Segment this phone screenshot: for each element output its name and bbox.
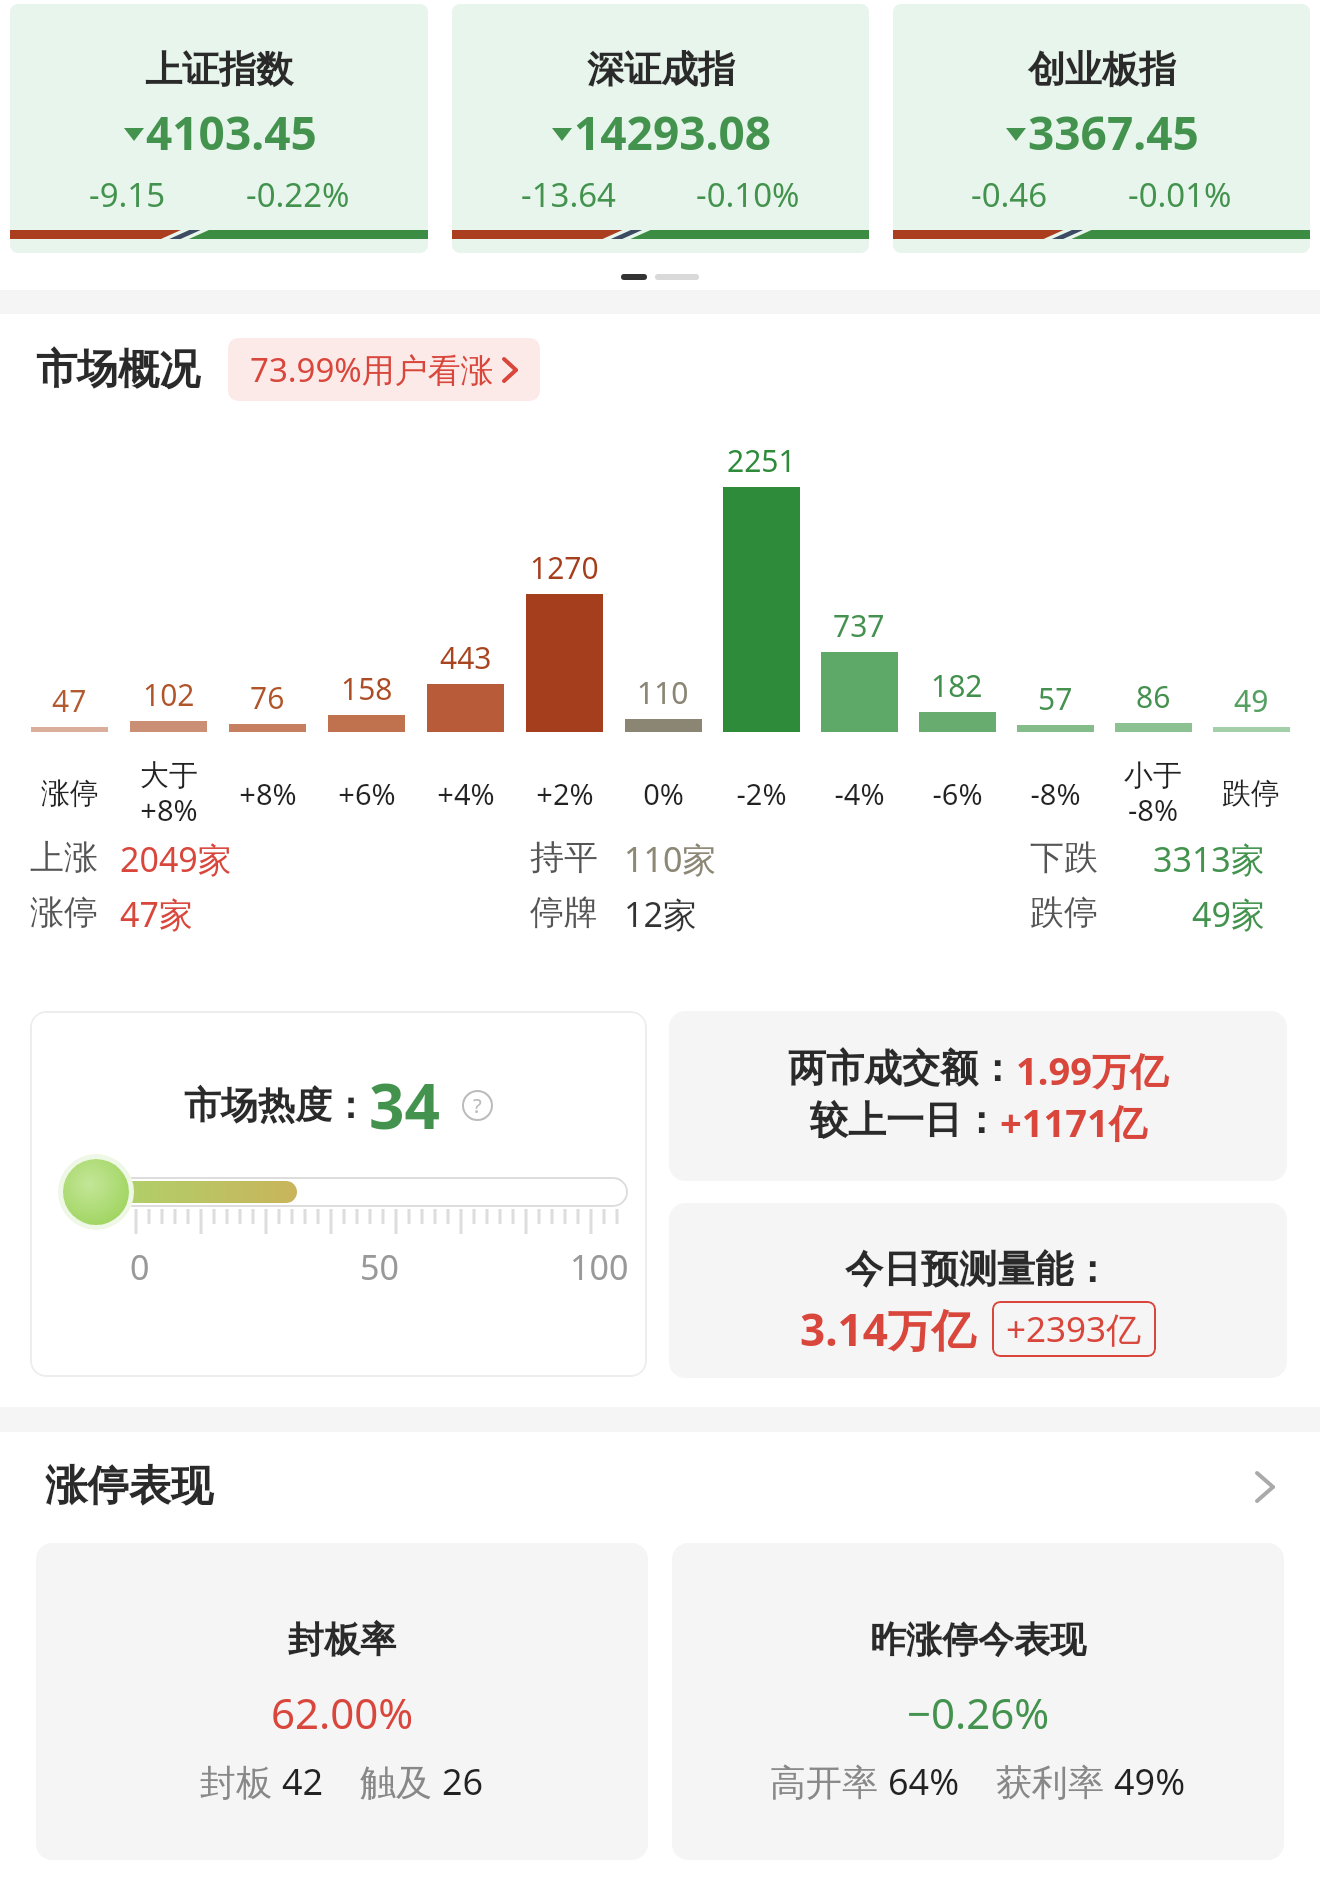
button[interactable]: 市场热度： [30, 1011, 647, 1377]
staticText: 获利率 [996, 1757, 1114, 1806]
staticText: 102 [143, 674, 195, 715]
staticText: +1171亿 [1000, 1096, 1147, 1148]
staticText: 2251 [727, 440, 796, 481]
staticText: -0.01% [1128, 172, 1232, 217]
staticText: 大于 +8% [140, 757, 198, 830]
staticText: 73.99%用户看涨 [250, 347, 494, 392]
staticText: 停牌 [530, 891, 598, 933]
staticText: 下跌 [1030, 836, 1098, 878]
staticText: 49 [1234, 680, 1269, 721]
staticText: 14293.08 [574, 101, 772, 164]
staticText: 57 [1038, 678, 1073, 719]
staticText: +6% [338, 774, 396, 813]
staticText: 100 [570, 1244, 629, 1290]
button[interactable]: 封板率 [36, 1543, 648, 1860]
staticText: 26 [442, 1757, 484, 1806]
staticText: +4% [437, 774, 495, 813]
staticText: ? [473, 1092, 482, 1119]
staticText: 158 [341, 668, 393, 709]
staticText: −0.26% [907, 1684, 1050, 1741]
staticText: +8% [239, 774, 297, 813]
staticText: 涨停 [41, 775, 99, 812]
staticText: 4103.45 [146, 101, 317, 164]
staticText: 182 [931, 665, 983, 706]
button[interactable]: 今日预测量能： [669, 1203, 1287, 1378]
staticText: 今日预测量能： [845, 1245, 1111, 1293]
staticText: 47 [52, 680, 87, 721]
staticText: 49% [1114, 1757, 1186, 1806]
button[interactable]: 昨涨停今表现 [672, 1543, 1284, 1860]
staticText: 昨涨停今表现 [870, 1617, 1086, 1662]
staticText: -8% [1030, 774, 1081, 813]
staticText: 涨停 [30, 891, 98, 933]
staticText: 50 [360, 1244, 399, 1290]
staticText: 42 [282, 1757, 324, 1806]
staticText: 12家 [624, 891, 697, 933]
staticText: 1270 [530, 547, 599, 588]
staticText: 市场热度： [184, 1082, 369, 1129]
staticText: 封板率 [288, 1617, 396, 1662]
staticText: 创业板指 [1028, 46, 1176, 93]
staticText: 0 [130, 1244, 150, 1290]
staticText: 较上一日： [810, 1096, 1000, 1144]
staticText: 62.00% [271, 1684, 414, 1741]
staticText: 市场概况 [36, 344, 200, 396]
staticText: 110 [637, 672, 689, 713]
staticText: 3.14万亿 [800, 1299, 976, 1359]
staticText: -0.46 [971, 172, 1048, 217]
staticText: 3367.45 [1028, 101, 1199, 164]
staticText: 47家 [120, 891, 193, 933]
staticText: 封板 [200, 1757, 282, 1806]
staticText: -0.22% [246, 172, 350, 217]
staticText: 两市成交额： [788, 1044, 1016, 1092]
staticText: -0.10% [696, 172, 800, 217]
staticText: 上涨 [30, 836, 98, 878]
staticText: 持平 [530, 836, 598, 878]
staticText: 49家 [1192, 891, 1265, 933]
staticText: 1.99万亿 [1016, 1044, 1168, 1096]
staticText: -13.64 [521, 172, 616, 217]
button[interactable]: 创业板指 [893, 4, 1310, 253]
staticText: 86 [1136, 676, 1171, 717]
button[interactable] [1255, 1469, 1275, 1505]
staticText: 跌停 [1030, 891, 1098, 933]
staticText: 3313家 [1153, 836, 1265, 878]
button[interactable]: 73.99%用户看涨 [228, 338, 540, 401]
button[interactable]: 深证成指 [452, 4, 869, 253]
staticText: 110家 [624, 836, 717, 878]
staticText: 高开率 [770, 1757, 888, 1806]
staticText: 小于 -8% [1124, 757, 1182, 830]
staticText: -2% [736, 774, 787, 813]
staticText: 76 [250, 677, 285, 718]
staticText: -4% [834, 774, 885, 813]
staticText: 触及 [360, 1757, 442, 1806]
button[interactable]: 两市成交额： [669, 1011, 1287, 1181]
staticText: -9.15 [89, 172, 166, 217]
staticText: 64% [888, 1757, 960, 1806]
staticText: +2393亿 [1006, 1305, 1142, 1353]
staticText: 深证成指 [587, 46, 735, 93]
staticText: 737 [833, 605, 885, 646]
staticText: 涨停表现 [45, 1460, 213, 1513]
staticText: 跌停 [1222, 775, 1280, 812]
staticText: 0% [643, 774, 684, 813]
button[interactable]: 上证指数 [10, 4, 428, 253]
staticText: 443 [440, 637, 492, 678]
staticText: 2049家 [120, 836, 232, 878]
staticText: +2% [536, 774, 594, 813]
staticText: 上证指数 [145, 46, 293, 93]
staticText: 34 [369, 1063, 440, 1147]
staticText: -6% [932, 774, 983, 813]
